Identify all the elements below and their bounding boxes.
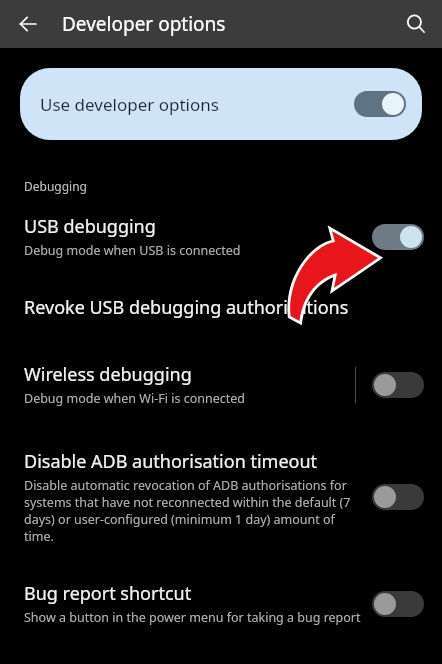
button[interactable]: Bug report shortcut toggle [372, 591, 424, 617]
button[interactable]: Use developer options [20, 68, 422, 140]
staticText: Disable automatic revocation of ADB auth… [24, 477, 362, 545]
button[interactable]: Revoke USB debugging authorisations [0, 295, 442, 320]
button[interactable]: USB debugging toggle [372, 224, 424, 250]
button[interactable]: Use developer options toggle [354, 91, 406, 117]
staticText: Disable ADB authorisation timeout [24, 449, 318, 474]
staticText: Show a button in the power menu for taki… [24, 609, 361, 626]
button[interactable]: Back [10, 6, 46, 42]
button[interactable]: Wireless debugging [0, 362, 442, 407]
button[interactable]: USB debugging [0, 214, 442, 259]
button[interactable]: Disable ADB authorisation timeout toggle [372, 484, 424, 510]
staticText: Debug mode when Wi-Fi is connected [24, 390, 245, 407]
button[interactable]: Search [398, 6, 434, 42]
button[interactable]: Wireless debugging toggle [372, 372, 424, 398]
staticText: Revoke USB debugging authorisations [24, 295, 349, 320]
staticText: Use developer options [40, 93, 219, 116]
staticText: Developer options [62, 11, 226, 37]
button[interactable]: Disable ADB authorisation timeout [0, 449, 442, 545]
staticText: Wireless debugging [24, 362, 192, 387]
staticText: Debug mode when USB is connected [24, 242, 241, 259]
staticText: Debugging [24, 178, 87, 194]
staticText: Bug report shortcut [24, 581, 192, 606]
staticText: USB debugging [24, 214, 156, 239]
button[interactable]: Bug report shortcut [0, 581, 442, 626]
